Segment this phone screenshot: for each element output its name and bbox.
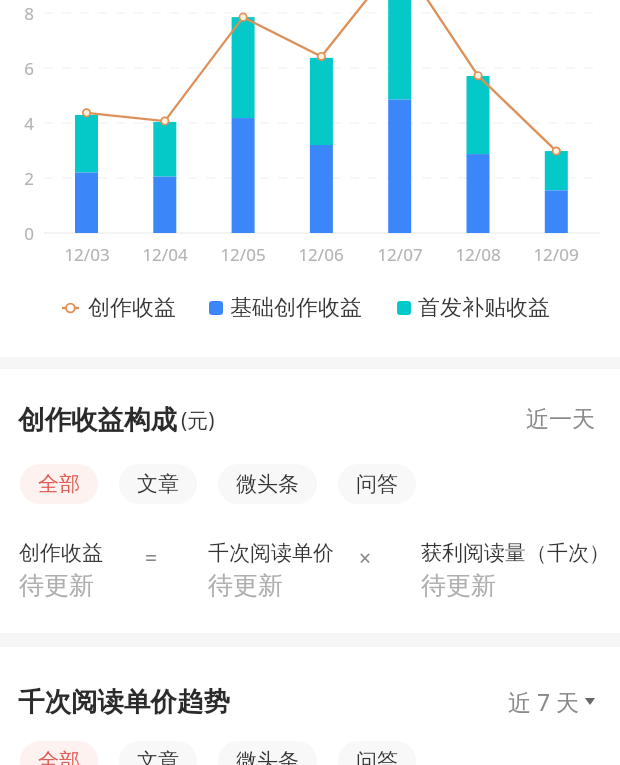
button[interactable]: 全部 xyxy=(20,464,98,504)
staticText: 创作收益构成 xyxy=(18,403,177,436)
button[interactable]: 微头条 xyxy=(218,464,317,504)
staticText: 8 xyxy=(12,2,34,25)
staticText: 文章 xyxy=(137,471,179,497)
button[interactable]: 选择时间范围 xyxy=(508,686,595,717)
staticText: 近一天 xyxy=(526,405,595,434)
staticText: 2 xyxy=(12,167,34,190)
staticText: 待更新 xyxy=(208,570,283,601)
staticText: 获利阅读量（千次） xyxy=(421,540,610,566)
button[interactable]: 文章 xyxy=(119,464,197,504)
staticText: 全部 xyxy=(38,748,80,765)
staticText: 近 7 天 xyxy=(508,686,580,717)
button[interactable]: 全部 xyxy=(20,741,98,765)
staticText: 千次阅读单价趋势 xyxy=(18,685,230,718)
button[interactable]: 基础创作收益 xyxy=(209,294,362,322)
staticText: 创作收益 xyxy=(19,540,103,566)
staticText: 问答 xyxy=(356,748,398,765)
staticText: 微头条 xyxy=(236,471,299,497)
staticText: 0 xyxy=(12,222,34,245)
staticText: 首发补贴收益 xyxy=(418,294,550,322)
button[interactable]: 文章 xyxy=(119,741,197,765)
staticText: 6 xyxy=(12,57,34,80)
button[interactable]: 创作收益 xyxy=(62,294,176,322)
staticText: 创作收益 xyxy=(88,294,176,322)
staticText: 4 xyxy=(12,112,34,135)
staticText: 12/09 xyxy=(516,243,596,266)
staticText: 待更新 xyxy=(19,570,94,601)
staticText: 待更新 xyxy=(421,570,496,601)
staticText: 12/08 xyxy=(438,243,518,266)
staticText: 全部 xyxy=(38,471,80,497)
staticText: 问答 xyxy=(356,471,398,497)
staticText: 12/03 xyxy=(47,243,127,266)
staticText: 12/04 xyxy=(125,243,205,266)
button[interactable]: 问答 xyxy=(338,741,416,765)
button[interactable]: 近一天 xyxy=(526,405,595,434)
staticText: 12/05 xyxy=(203,243,283,266)
button[interactable]: 微头条 xyxy=(218,741,317,765)
staticText: 千次阅读单价 xyxy=(208,540,334,566)
staticText: (元) xyxy=(181,406,215,435)
staticText: = xyxy=(145,544,158,573)
staticText: 12/06 xyxy=(281,243,361,266)
staticText: 12/07 xyxy=(360,243,440,266)
staticText: 微头条 xyxy=(236,748,299,765)
button[interactable]: 首发补贴收益 xyxy=(397,294,550,322)
staticText: × xyxy=(359,544,372,573)
staticText: 文章 xyxy=(137,748,179,765)
button[interactable]: 问答 xyxy=(338,464,416,504)
staticText: 基础创作收益 xyxy=(230,294,362,322)
